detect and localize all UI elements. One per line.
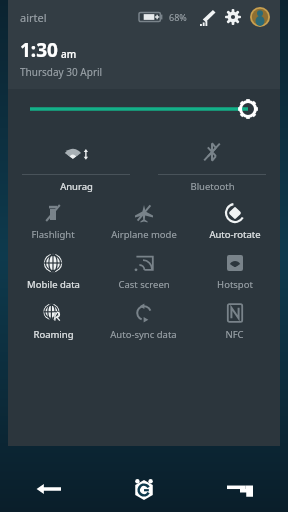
staticText: NFC	[225, 328, 244, 341]
button[interactable]: Recent apps	[192, 468, 288, 512]
button[interactable]: Back	[0, 468, 96, 512]
button[interactable]: Brightness	[8, 89, 280, 129]
button[interactable]: Roaming	[8, 297, 98, 347]
staticText: 68%	[169, 11, 187, 23]
staticText: Roaming	[33, 328, 74, 341]
button[interactable]: Hotspot	[189, 247, 280, 297]
button[interactable]: Auto-sync data	[98, 297, 189, 347]
button[interactable]: Anurag	[8, 129, 144, 197]
staticText: Hotspot	[217, 278, 253, 291]
button[interactable]: Mobile data	[8, 247, 98, 297]
button[interactable]: User profile	[248, 5, 272, 29]
button[interactable]: NFC	[189, 297, 280, 347]
button[interactable]: Settings	[221, 5, 245, 29]
staticText: am	[61, 47, 77, 61]
staticText: Thursday 30 April	[20, 65, 103, 79]
staticText: Flashlight	[31, 228, 75, 241]
staticText: Anurag	[60, 180, 93, 193]
button[interactable]: Home	[96, 468, 192, 512]
button[interactable]: Bluetooth	[144, 129, 280, 197]
staticText: Airplane mode	[111, 228, 177, 241]
button[interactable]: Edit	[195, 5, 219, 29]
button[interactable]: Flashlight	[8, 197, 98, 247]
staticText: Auto-rotate	[209, 228, 261, 241]
staticText: airtel	[20, 10, 47, 25]
staticText: 1:30	[20, 37, 58, 63]
button[interactable]: Airplane mode	[98, 197, 189, 247]
staticText: Cast screen	[118, 278, 170, 291]
staticText: Auto-sync data	[110, 328, 177, 341]
button[interactable]: Cast screen	[98, 247, 189, 297]
staticText: Bluetooth	[190, 180, 235, 193]
staticText: Mobile data	[27, 278, 80, 291]
button[interactable]: Auto-rotate	[189, 197, 280, 247]
